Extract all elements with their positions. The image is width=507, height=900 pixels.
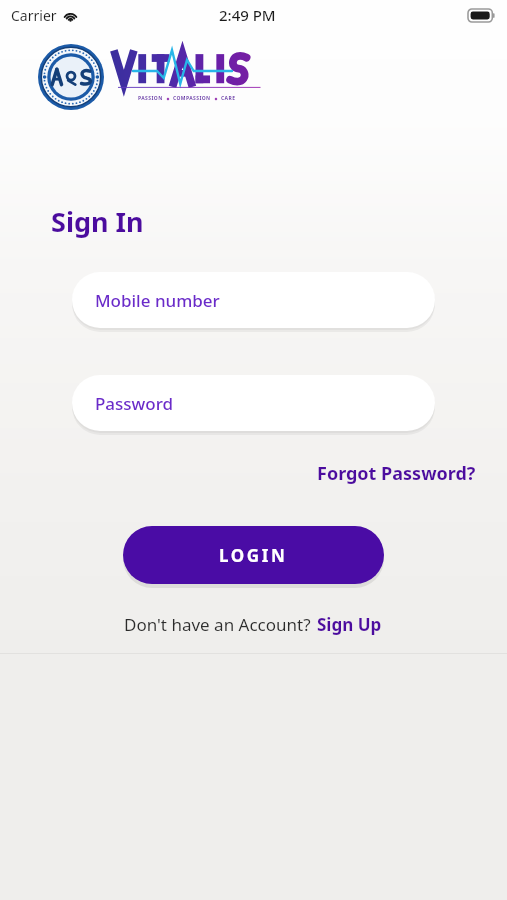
staticText: PASSION	[138, 95, 163, 102]
staticText: 2:49 PM	[219, 5, 276, 25]
staticText: Mobile number	[95, 289, 220, 312]
button[interactable]: Password	[72, 375, 435, 431]
staticText: LOGIN	[219, 544, 288, 567]
staticText: Sign In	[51, 203, 144, 240]
staticText: CARE	[221, 95, 236, 102]
staticText: Password	[95, 392, 174, 415]
staticText: Sign Up	[317, 613, 382, 636]
staticText: Forgot Password?	[317, 461, 476, 486]
staticText: Carrier	[11, 6, 57, 25]
button[interactable]: Mobile number	[72, 272, 435, 328]
button[interactable]: Forgot Password?	[313, 457, 480, 490]
staticText: COMPASSION	[173, 95, 211, 102]
button[interactable]: Sign Up	[311, 610, 384, 639]
button[interactable]: LOGIN	[123, 526, 384, 584]
staticText: Don't have an Account?	[124, 613, 311, 636]
